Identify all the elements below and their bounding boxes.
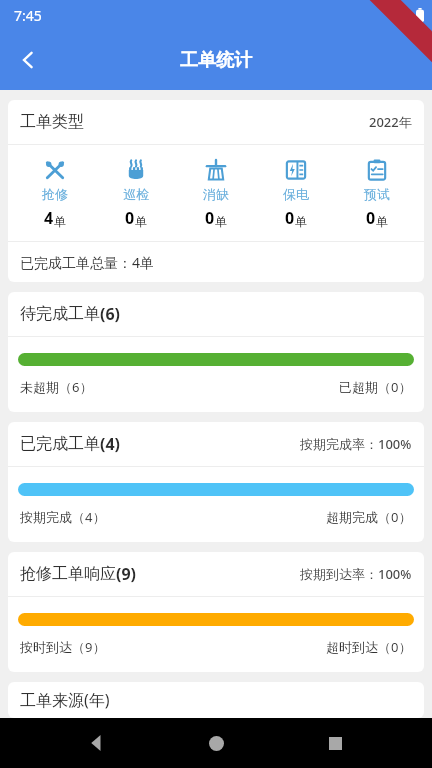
staticText: 已完成工单总量：4单: [20, 253, 155, 272]
staticText: 已完成工单: [20, 434, 100, 454]
staticText: 保电: [283, 186, 309, 202]
staticText: 按期完成率：100%: [300, 435, 412, 453]
staticText: 未超期（6）: [20, 378, 93, 396]
staticText: 按期到达率：100%: [300, 565, 412, 583]
button[interactable]: 预试: [344, 157, 410, 229]
staticText: 0: [366, 207, 376, 229]
staticText: 7:45: [14, 6, 42, 25]
button[interactable]: 保电: [263, 157, 329, 229]
staticText: 巡检: [123, 186, 149, 202]
staticText: 预试: [364, 186, 390, 202]
staticText: (6): [100, 303, 121, 325]
staticText: 0: [285, 207, 295, 229]
button[interactable]: 消缺: [183, 157, 249, 229]
staticText: 0: [205, 207, 215, 229]
staticText: 抢修工单响应: [20, 564, 116, 584]
staticText: 待完成工单: [20, 304, 100, 324]
staticText: (4): [100, 433, 121, 455]
staticText: 单: [295, 214, 307, 229]
staticText: 工单类型: [20, 112, 84, 132]
staticText: 单: [215, 214, 227, 229]
staticText: 按期完成（4）: [20, 508, 106, 526]
staticText: 4: [44, 207, 54, 229]
staticText: 单: [135, 214, 147, 229]
staticText: 0: [125, 207, 135, 229]
staticText: 工单统计: [180, 49, 252, 72]
button[interactable]: Home: [194, 721, 238, 765]
staticText: 2022年: [369, 113, 412, 131]
staticText: 消缺: [203, 186, 229, 202]
button[interactable]: 抢修: [22, 157, 88, 229]
button[interactable]: Recent apps: [313, 721, 357, 765]
staticText: 超期完成（0）: [326, 508, 412, 526]
staticText: 工单来源(年): [20, 689, 110, 711]
staticText: 按时到达（9）: [20, 638, 106, 656]
staticText: 已超期（0）: [339, 378, 412, 396]
staticText: 抢修: [42, 186, 68, 202]
button[interactable]: Back: [75, 721, 119, 765]
staticText: 单: [54, 214, 66, 229]
staticText: 单: [376, 214, 388, 229]
staticText: (9): [116, 563, 137, 585]
button[interactable]: Back: [8, 40, 48, 80]
button[interactable]: 巡检: [103, 157, 169, 229]
staticText: 超时到达（0）: [326, 638, 412, 656]
